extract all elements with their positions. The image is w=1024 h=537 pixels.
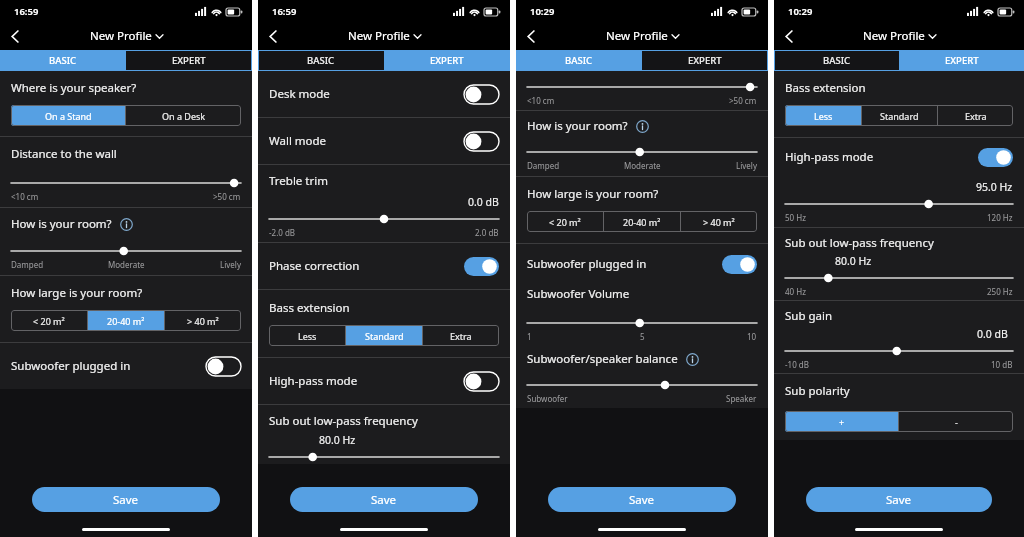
staticText: Sub gain (785, 308, 833, 324)
button[interactable]: EXPERT (126, 50, 252, 71)
button[interactable] (269, 212, 499, 226)
button[interactable] (785, 197, 1013, 211)
staticText: How is your room? (527, 118, 628, 134)
button[interactable] (269, 450, 499, 464)
button[interactable]: Back (516, 22, 546, 50)
button[interactable]: High-pass mode (258, 358, 510, 404)
button[interactable]: Wall mode (464, 132, 499, 151)
staticText: 80.0 Hz (319, 433, 356, 447)
button[interactable]: New Profile (606, 28, 679, 44)
button[interactable]: Back (0, 22, 30, 50)
staticText: Speaker (726, 393, 757, 404)
button[interactable]: Extra (423, 325, 499, 346)
staticText: Damped (11, 259, 44, 270)
button[interactable]: > 40 m² (165, 310, 241, 331)
button[interactable] (527, 80, 757, 94)
staticText: Save (629, 492, 655, 508)
staticText: <10 cm (11, 191, 39, 202)
staticText: >50 cm (213, 191, 241, 202)
staticText: 80.0 Hz (835, 254, 872, 268)
staticText: Where is your speaker? (11, 80, 137, 96)
button[interactable]: > 40 m² (681, 211, 757, 232)
button[interactable]: EXPERT (642, 50, 768, 71)
button[interactable]: High-pass mode (978, 148, 1013, 167)
button[interactable]: Extra (938, 105, 1013, 126)
button[interactable]: High-pass mode (464, 372, 499, 391)
button[interactable]: 20-40 m² (88, 310, 164, 331)
button[interactable]: Save (290, 487, 478, 512)
button[interactable] (527, 145, 757, 159)
staticText: 20-40 m² (107, 315, 145, 327)
button[interactable]: High-pass mode (774, 138, 1024, 176)
staticText: Lively (220, 259, 241, 270)
button[interactable]: Save (806, 487, 992, 512)
button[interactable]: On a Stand (11, 105, 125, 126)
button[interactable]: Phase correction (258, 243, 510, 289)
button[interactable]: Desk mode (464, 85, 499, 104)
other: Info (686, 353, 699, 366)
staticText: New Profile (348, 28, 410, 44)
button[interactable] (527, 378, 757, 392)
staticText: 10:29 (788, 5, 813, 18)
other: Info (120, 218, 133, 231)
button[interactable] (11, 176, 241, 190)
button[interactable]: BASIC (516, 50, 642, 71)
button[interactable]: - (899, 411, 1013, 432)
staticText: BASIC (49, 54, 77, 67)
staticText: On a Desk (162, 110, 206, 122)
staticText: Save (113, 492, 139, 508)
staticText: New Profile (606, 28, 668, 44)
staticText: EXPERT (430, 54, 464, 67)
staticText: Subwoofer Volume (527, 286, 630, 302)
staticText: Less (298, 330, 317, 342)
button[interactable]: Back (774, 22, 804, 50)
staticText: EXPERT (945, 54, 979, 67)
staticText: Bass extension (269, 300, 350, 316)
staticText: New Profile (90, 28, 152, 44)
button[interactable] (785, 344, 1013, 358)
button[interactable]: Subwoofer plugged in (0, 343, 252, 389)
staticText: Damped (527, 160, 560, 171)
staticText: Moderate (624, 160, 661, 171)
button[interactable]: BASIC (0, 50, 126, 71)
button[interactable] (11, 244, 241, 258)
button[interactable]: Save (548, 487, 736, 512)
staticText: Lively (736, 160, 757, 171)
button[interactable]: Less (785, 105, 861, 126)
button[interactable]: Wall mode (258, 118, 510, 164)
button[interactable]: Phase correction (464, 257, 499, 276)
button[interactable]: + (785, 411, 898, 432)
button[interactable]: Less (269, 325, 345, 346)
button[interactable]: New Profile (348, 28, 421, 44)
button[interactable]: EXPERT (899, 50, 1024, 71)
button[interactable]: Save (32, 487, 220, 512)
staticText: -2.0 dB (269, 227, 296, 238)
button[interactable]: Desk mode (258, 71, 510, 117)
button[interactable]: On a Desk (126, 105, 241, 126)
button[interactable]: 20-40 m² (604, 211, 680, 232)
button[interactable]: < 20 m² (527, 211, 603, 232)
staticText: New Profile (863, 28, 925, 44)
button[interactable]: Standard (862, 105, 937, 126)
staticText: Subwoofer/speaker balance (527, 351, 678, 367)
button[interactable]: EXPERT (384, 50, 510, 71)
staticText: BASIC (307, 54, 335, 67)
button[interactable] (527, 316, 757, 330)
staticText: 0.0 dB (468, 195, 499, 209)
button[interactable]: < 20 m² (11, 310, 87, 331)
button[interactable]: New Profile (863, 28, 936, 44)
button[interactable]: Standard (346, 325, 422, 346)
button[interactable]: BASIC (258, 50, 384, 71)
button[interactable]: Subwoofer plugged in (206, 357, 241, 376)
button[interactable]: Subwoofer plugged in (516, 244, 768, 284)
button[interactable]: Back (258, 22, 288, 50)
button[interactable]: New Profile (90, 28, 163, 44)
staticText: <10 cm (527, 95, 555, 106)
staticText: < 20 m² (549, 216, 581, 228)
staticText: 16:59 (272, 5, 297, 18)
staticText: -10 dB (785, 359, 809, 370)
staticText: How large is your room? (11, 285, 143, 301)
button[interactable] (785, 271, 1013, 285)
button[interactable]: BASIC (774, 50, 899, 71)
button[interactable]: Subwoofer plugged in (722, 255, 757, 274)
